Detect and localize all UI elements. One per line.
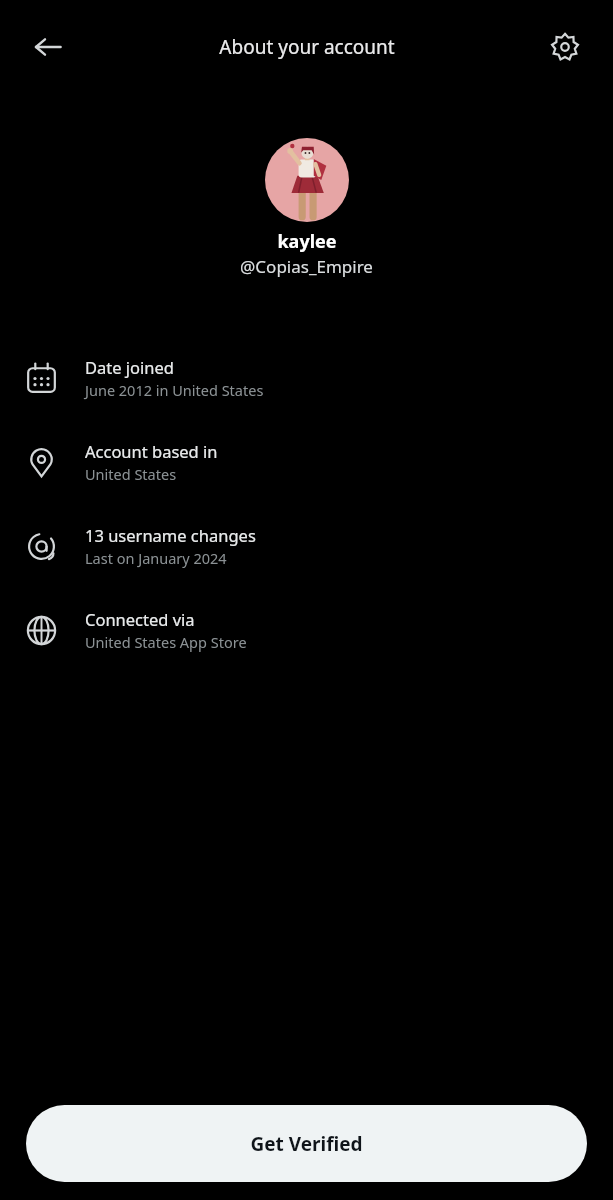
staticText: Account based in	[85, 440, 218, 462]
staticText: @Copias_Empire	[240, 255, 373, 278]
button[interactable]: Profile photo	[265, 138, 349, 222]
staticText: United States	[85, 464, 177, 484]
button[interactable]: 13 username changes	[0, 504, 613, 588]
staticText: Connected via	[85, 608, 195, 630]
button[interactable]: Back	[20, 19, 76, 75]
button[interactable]: Connected via	[0, 588, 613, 672]
staticText: June 2012 in United States	[85, 380, 264, 400]
staticText: Get Verified	[250, 1131, 363, 1157]
button[interactable]: Settings	[537, 19, 593, 75]
button[interactable]: Get Verified	[26, 1105, 587, 1182]
button[interactable]: Date joined	[0, 336, 613, 420]
staticText: About your account	[219, 34, 395, 60]
staticText: 13 username changes	[85, 524, 256, 546]
staticText: Date joined	[85, 356, 175, 378]
button[interactable]: Account based in	[0, 420, 613, 504]
staticText: United States App Store	[85, 632, 247, 652]
staticText: Last on January 2024	[85, 548, 227, 568]
staticText: kaylee	[277, 229, 337, 254]
